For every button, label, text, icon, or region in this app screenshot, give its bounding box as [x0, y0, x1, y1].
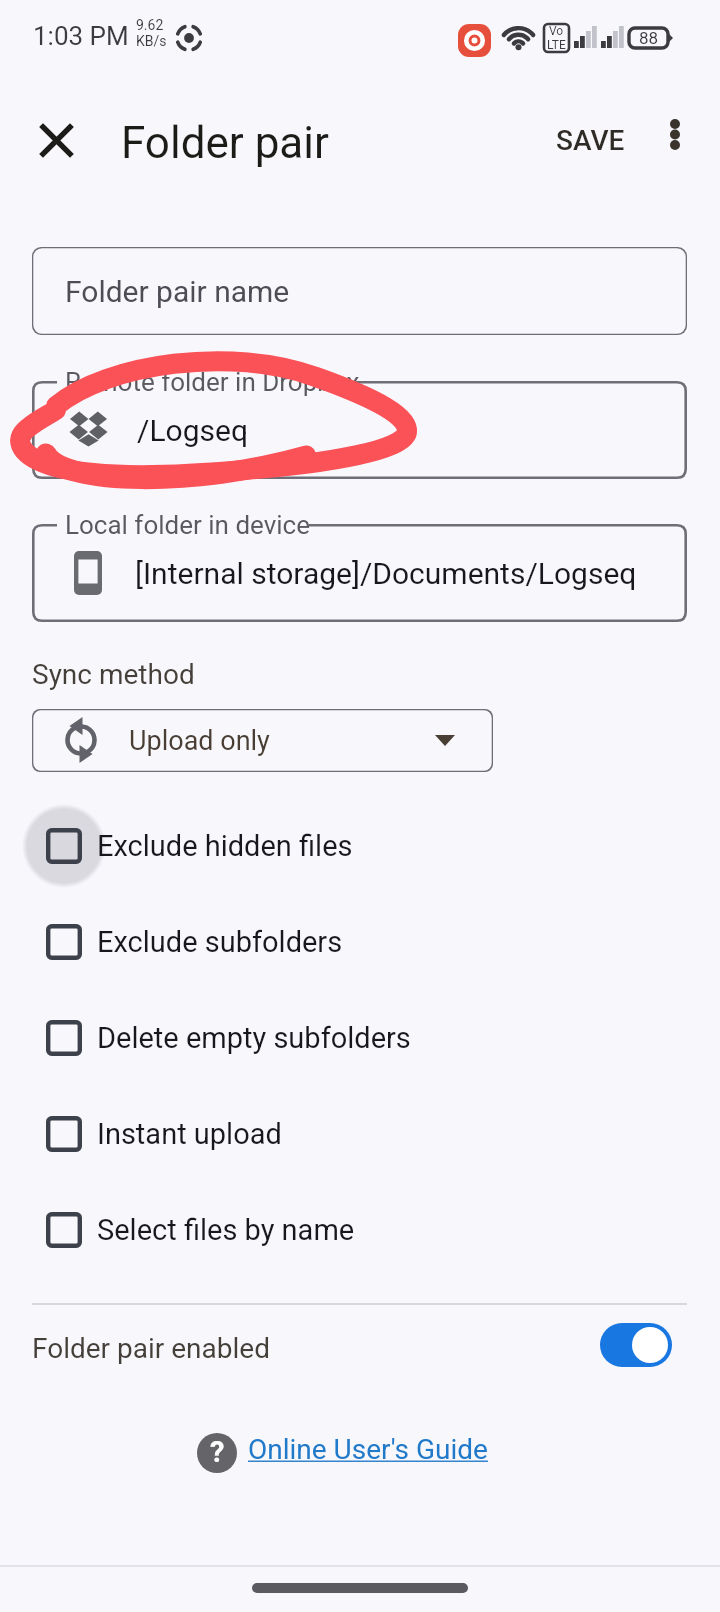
staticText: LTE	[547, 38, 566, 52]
button[interactable]: More options	[645, 104, 705, 164]
button[interactable]: SAVE	[528, 106, 652, 174]
button[interactable]: Instant upload	[0, 1092, 720, 1176]
button[interactable]: Exclude hidden files	[0, 804, 720, 888]
staticText: 1:03 PM	[33, 21, 129, 51]
staticText: ?	[210, 1435, 225, 1469]
staticText: Online User's Guide	[248, 1433, 488, 1466]
staticText: Exclude subfolders	[97, 925, 343, 959]
staticText: Local folder in device	[65, 510, 310, 540]
staticText: Upload only	[129, 725, 270, 757]
button[interactable]: Exclude subfolders	[0, 900, 720, 984]
button[interactable]: Delete empty subfolders	[0, 996, 720, 1080]
button[interactable]: Close	[20, 104, 92, 176]
staticText: [Internal storage]/Documents/Logseq	[135, 556, 637, 591]
button[interactable]: Folder pair name	[32, 247, 687, 335]
staticText: Folder pair enabled	[32, 1332, 270, 1365]
staticText: KB/s	[136, 33, 167, 49]
staticText: Exclude hidden files	[97, 829, 353, 863]
staticText: Folder pair name	[65, 274, 290, 309]
staticText: 9.62	[136, 17, 164, 33]
staticText: Remote folder in Dropbox	[65, 367, 360, 397]
button[interactable]: ?	[197, 1429, 488, 1469]
staticText: Select files by name	[97, 1213, 355, 1247]
staticText: Sync method	[32, 658, 195, 691]
button[interactable]: Folder pair enabled	[0, 1304, 720, 1392]
button[interactable]: Upload only	[32, 709, 493, 772]
staticText: Delete empty subfolders	[97, 1021, 411, 1055]
staticText: Instant upload	[97, 1117, 282, 1151]
staticText: Vo	[549, 24, 564, 38]
staticText: /Logseq	[137, 413, 248, 448]
button[interactable]: Local folder in device	[32, 524, 687, 622]
button[interactable]: Select files by name	[0, 1188, 720, 1272]
staticText: Folder pair	[121, 117, 329, 169]
button[interactable]: Remote folder in Dropbox	[32, 381, 687, 479]
staticText: 88	[639, 28, 659, 48]
staticText: SAVE	[556, 124, 625, 157]
